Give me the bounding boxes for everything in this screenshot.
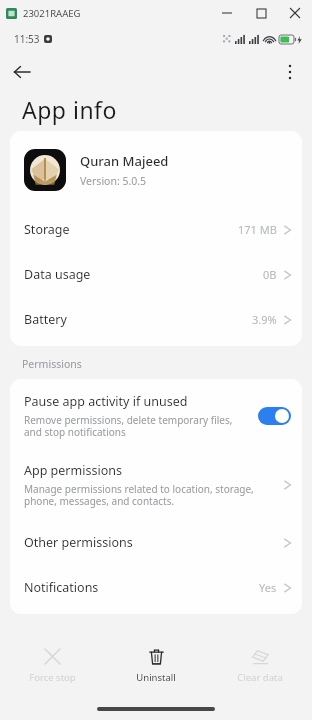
staticText: Permissions bbox=[22, 357, 82, 371]
button[interactable]: Maximize bbox=[244, 0, 278, 26]
staticText: Version: 5.0.5 bbox=[80, 174, 147, 188]
button[interactable]: Pause app activity if unused bbox=[10, 379, 302, 452]
button[interactable]: Pause app activity toggle bbox=[258, 407, 291, 425]
staticText: 3.9% bbox=[252, 312, 277, 327]
staticText: Uninstall bbox=[136, 671, 176, 684]
staticText: Remove permissions, delete temporary fil… bbox=[24, 413, 248, 439]
staticText: Pause app activity if unused bbox=[24, 393, 188, 410]
staticText: App info bbox=[22, 94, 117, 125]
staticText: Notifications bbox=[24, 579, 99, 596]
staticText: App permissions bbox=[24, 462, 122, 479]
button[interactable]: More options bbox=[268, 52, 312, 92]
button[interactable]: Data usage bbox=[10, 252, 302, 297]
button[interactable]: Storage bbox=[10, 207, 302, 252]
staticText: 0B bbox=[263, 267, 277, 282]
staticText: Battery bbox=[24, 311, 67, 328]
button[interactable]: Notifications bbox=[10, 565, 302, 610]
button[interactable]: Close bbox=[278, 0, 312, 26]
button[interactable]: Other permissions bbox=[10, 520, 302, 565]
staticText: Clear data bbox=[237, 671, 283, 684]
staticText: Manage permissions related to location, … bbox=[24, 482, 274, 508]
staticText: Other permissions bbox=[24, 534, 133, 551]
button[interactable]: Quran Majeed bbox=[10, 131, 302, 207]
staticText: 11:53 bbox=[14, 32, 40, 46]
button[interactable]: Back bbox=[0, 52, 44, 92]
button[interactable]: Uninstall bbox=[104, 640, 208, 698]
staticText: Quran Majeed bbox=[80, 152, 169, 170]
button[interactable]: Clear data bbox=[208, 640, 312, 698]
staticText: Data usage bbox=[24, 266, 91, 283]
staticText: Storage bbox=[24, 221, 70, 238]
button[interactable]: App permissions bbox=[10, 452, 302, 520]
button[interactable]: Force stop bbox=[0, 640, 104, 698]
staticText: Force stop bbox=[29, 671, 76, 684]
staticText: 171 MB bbox=[238, 222, 277, 237]
staticText: 23021RAAEG bbox=[23, 7, 81, 20]
button[interactable]: Battery bbox=[10, 297, 302, 342]
button[interactable]: Minimize bbox=[210, 0, 244, 26]
staticText: Yes bbox=[259, 580, 277, 595]
